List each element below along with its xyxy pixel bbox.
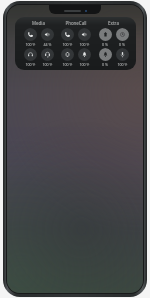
staticText: 44 % — [43, 42, 52, 47]
staticText: Extra — [108, 20, 119, 26]
button[interactable]: Ringtone volume — [76, 48, 92, 67]
button[interactable]: Call earpiece volume — [59, 28, 75, 47]
button[interactable]: Media headphones volume — [22, 48, 38, 67]
button[interactable]: Media headset volume — [39, 48, 55, 67]
staticText: 0 % — [119, 42, 125, 47]
button[interactable]: Media speaker volume — [39, 28, 55, 47]
staticText: 100 % — [25, 62, 36, 67]
staticText: Media — [32, 20, 45, 26]
button[interactable]: Alarm volume — [114, 28, 130, 47]
staticText: 100 % — [62, 62, 73, 67]
staticText: 0 % — [102, 62, 108, 67]
button[interactable]: Media call volume — [22, 28, 38, 47]
button[interactable]: Microphone level — [114, 48, 130, 67]
button[interactable]: Call speaker volume — [76, 28, 92, 47]
staticText: 100 % — [25, 42, 36, 47]
staticText: 100 % — [42, 62, 53, 67]
staticText: 0 % — [102, 42, 108, 47]
staticText: 100 % — [117, 62, 128, 67]
button[interactable]: Call vibrate level — [59, 48, 75, 67]
button[interactable]: Notification volume — [97, 48, 113, 67]
staticText: PhoneCall — [65, 20, 87, 26]
button[interactable]: Battery alert volume — [97, 28, 113, 47]
staticText: 100 % — [62, 42, 73, 47]
staticText: 100 % — [79, 62, 90, 67]
staticText: 100 % — [79, 42, 90, 47]
